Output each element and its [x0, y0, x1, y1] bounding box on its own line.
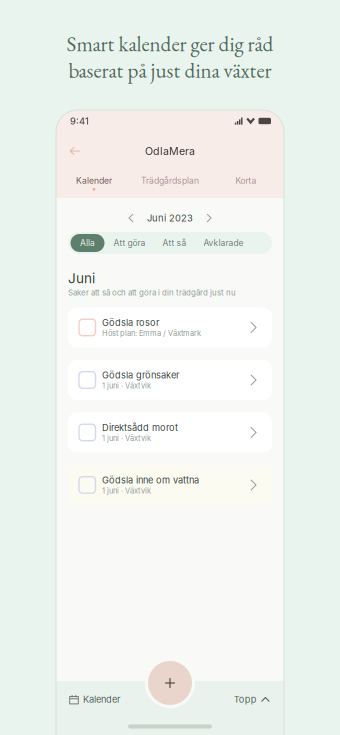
staticText: Att så — [162, 238, 186, 248]
staticText: 9:41 — [70, 115, 89, 127]
staticText: Saker att så och att göra i din trädgård… — [68, 288, 236, 297]
button[interactable]: Att göra — [105, 234, 153, 252]
staticText: Höst plan: Emma / Växtmark — [102, 329, 201, 338]
staticText: Trädgårdsplan — [141, 175, 199, 186]
button[interactable]: Att så — [154, 234, 194, 252]
button[interactable]: Alla — [70, 234, 104, 252]
button[interactable]: Topp — [228, 684, 284, 714]
button[interactable]: Korta — [208, 170, 284, 196]
button[interactable]: Back — [63, 141, 87, 161]
staticText: Juni 2023 — [147, 212, 193, 224]
button[interactable]: Gödsla grönsaker — [68, 360, 272, 400]
staticText: Korta — [235, 175, 256, 186]
button[interactable]: Add — [144, 657, 196, 709]
staticText: Gödsla inne om vattna — [102, 475, 199, 486]
staticText: Alla — [80, 238, 95, 248]
staticText: Topp — [234, 694, 257, 705]
staticText: baserat på just dina växter — [68, 56, 271, 84]
staticText: Att göra — [113, 238, 145, 248]
button[interactable]: Previous month — [128, 213, 134, 223]
button[interactable]: Kalender — [56, 170, 132, 196]
staticText: 1 juni · Växtvik — [102, 486, 151, 495]
button[interactable]: Next month — [206, 213, 212, 223]
staticText: Gödsla rosor — [102, 317, 159, 328]
button[interactable]: Trädgårdsplan — [132, 170, 208, 196]
staticText: OdlaMera — [145, 144, 195, 157]
staticText: Kalender — [76, 175, 112, 186]
staticText: Kalender — [83, 694, 120, 705]
button[interactable]: Avklarade — [195, 234, 251, 252]
staticText: Gödsla grönsaker — [102, 370, 179, 381]
button[interactable]: Direktsådd morot — [68, 412, 272, 452]
staticText: 1 juni · Växtvik — [102, 381, 151, 390]
staticText: 1 juni · Växtvik — [102, 434, 151, 443]
staticText: Juni — [68, 270, 95, 286]
staticText: Avklarade — [203, 238, 243, 248]
staticText: Smart kalender ger dig råd — [66, 30, 273, 57]
button[interactable]: Gödsla rosor — [68, 307, 272, 347]
button[interactable]: Kalender — [56, 684, 126, 714]
staticText: Direktsådd morot — [102, 422, 178, 433]
button[interactable]: Gödsla inne om vattna — [68, 465, 272, 505]
